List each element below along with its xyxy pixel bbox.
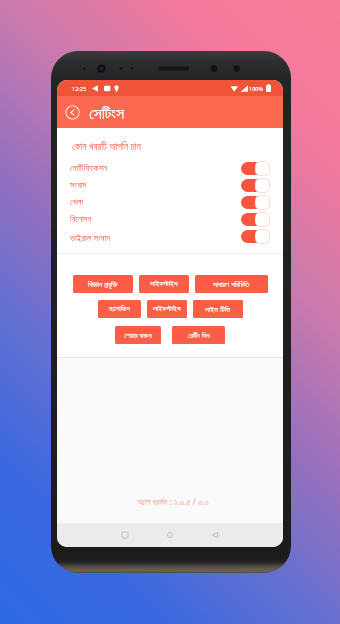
button[interactable]: লাইফস্টাইল [147, 300, 187, 318]
staticText: ভাইরাল সংবাদ [70, 231, 110, 243]
staticText: নোটিফিকেশন [70, 164, 108, 173]
button[interactable]: নোটিফিকেশন [57, 160, 283, 177]
button[interactable]: রেটিং দিন [172, 326, 225, 344]
button[interactable]: খেলা [57, 194, 283, 211]
staticText: সংবাদ [70, 181, 87, 190]
button[interactable]: বিজ্ঞান প্রযুক্তি [73, 275, 133, 293]
button[interactable]: ভাইরাল সংবাদ [57, 228, 283, 245]
staticText: অ্যাপ ভার্সন : ১.৩.৫ / ৩.০ [137, 496, 209, 508]
staticText: শেয়ার করুন [124, 330, 152, 340]
button[interactable]: সাধারণ পরিচিতি [195, 275, 268, 293]
staticText: 12:25 [72, 85, 87, 92]
staticText: বিজ্ঞান প্রযুক্তি [88, 279, 118, 289]
staticText: ম্যাগাজিন [109, 305, 130, 313]
staticText: লাইভ টিভি [205, 304, 231, 314]
staticText: সাধারণ পরিচিতি [213, 279, 250, 289]
button[interactable]: Recent apps [117, 527, 133, 543]
staticText: 100% [249, 85, 264, 92]
button[interactable]: শেয়ার করুন [115, 326, 161, 344]
staticText: কোন খবরটি আপনি চান [72, 140, 141, 153]
staticText: লাইফস্টাইল [150, 280, 178, 288]
staticText: সেটিংস [89, 106, 124, 122]
button[interactable]: Home [162, 527, 178, 543]
staticText: বিনোদন [70, 215, 92, 224]
button[interactable]: ম্যাগাজিন [98, 300, 141, 318]
button[interactable]: Back [207, 527, 223, 543]
staticText: রেটিং দিন [188, 330, 210, 340]
button[interactable]: লাইফস্টাইল [139, 275, 189, 293]
button[interactable]: সংবাদ [57, 177, 283, 194]
button[interactable]: বিনোদন [57, 211, 283, 228]
staticText: খেলা [70, 198, 84, 207]
button[interactable]: Back [65, 105, 80, 120]
staticText: লাইফস্টাইল [153, 305, 181, 313]
button[interactable]: লাইভ টিভি [193, 300, 243, 318]
